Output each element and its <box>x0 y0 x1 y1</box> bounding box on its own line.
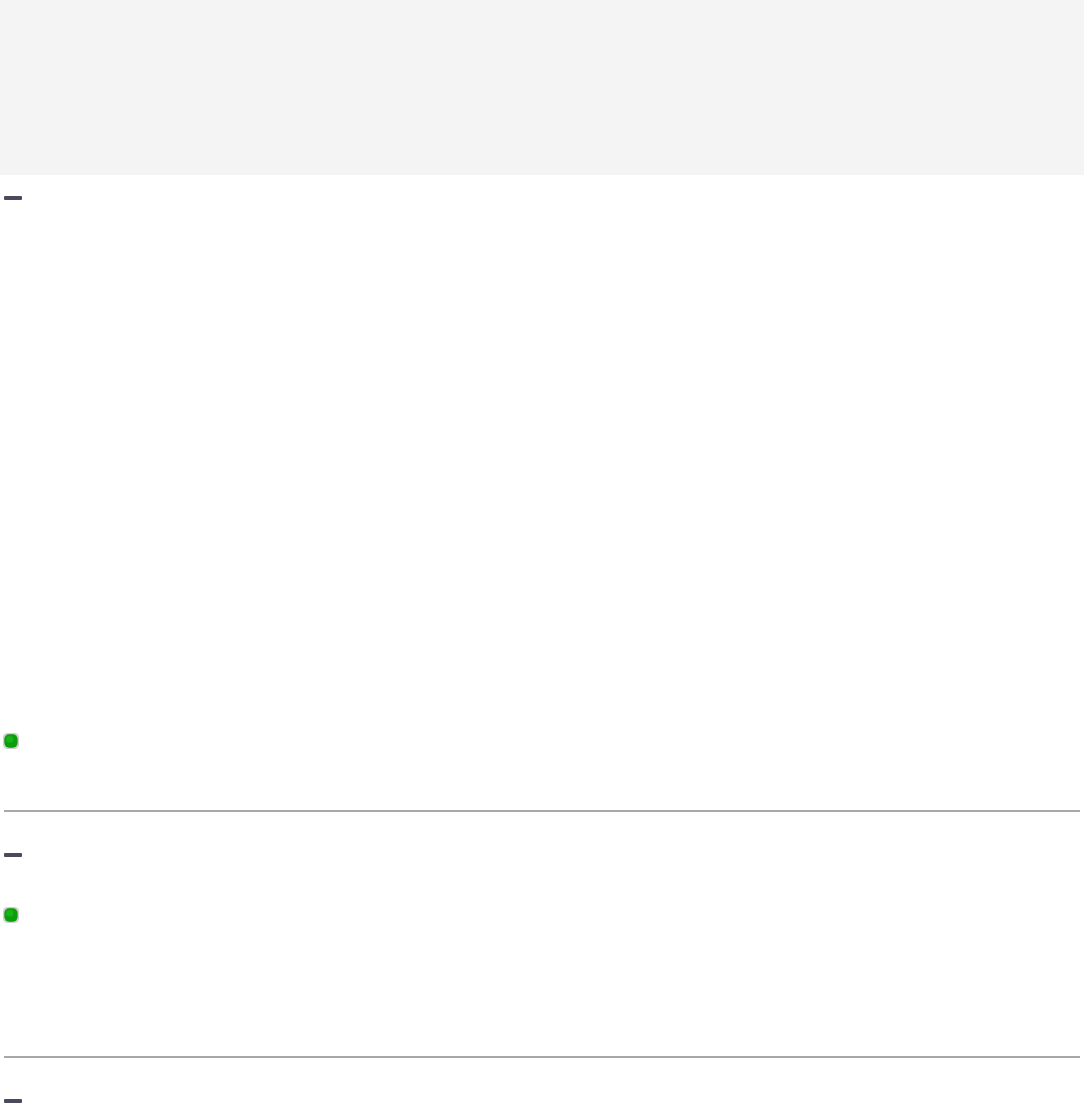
button[interactable]: Status indicator <box>3 733 19 749</box>
button[interactable]: Status indicator <box>3 907 19 923</box>
button[interactable] <box>4 853 22 857</box>
button[interactable] <box>4 196 22 200</box>
button[interactable] <box>4 1099 22 1103</box>
